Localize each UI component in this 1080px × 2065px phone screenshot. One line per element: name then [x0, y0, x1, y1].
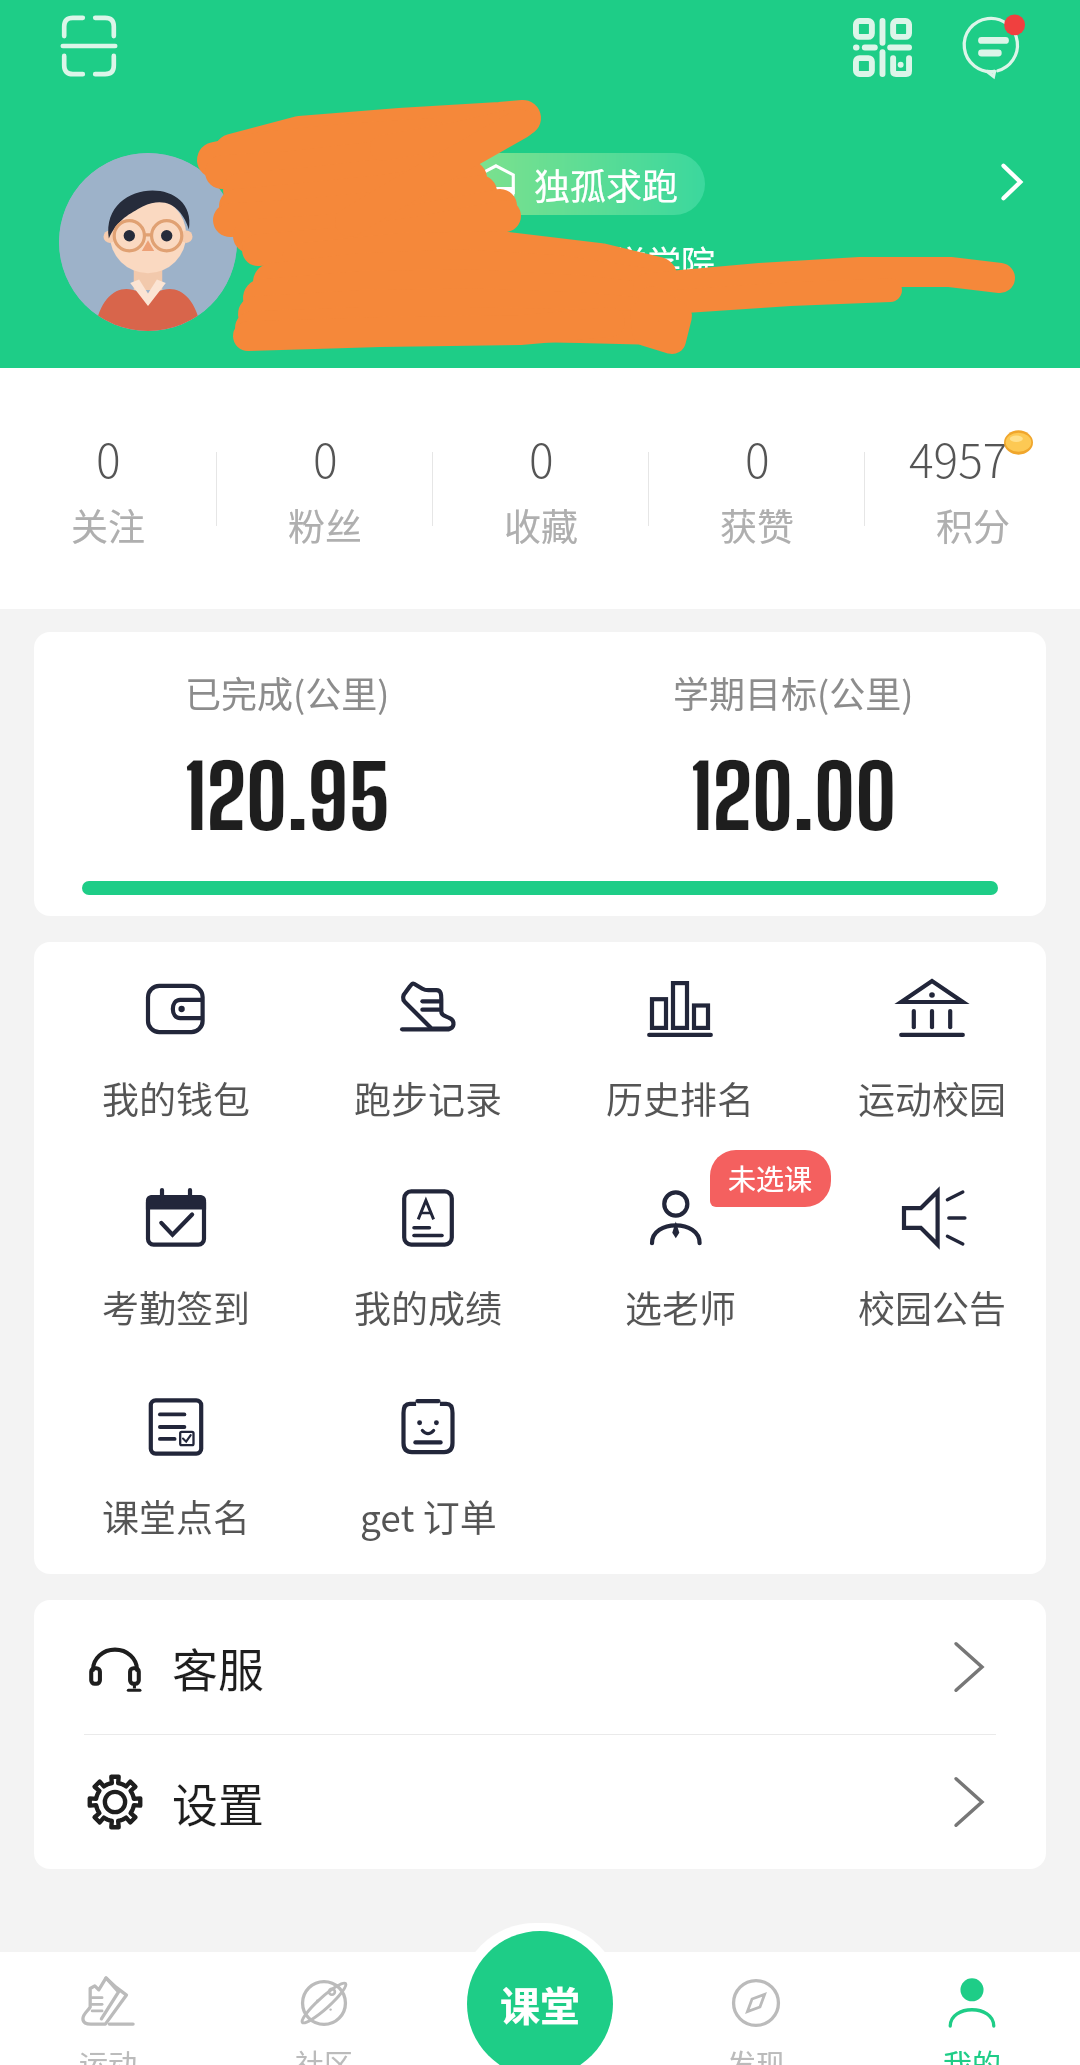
staticText: 考勤签到 [102, 1280, 250, 1334]
staticText: 120.00 [690, 744, 897, 848]
staticText: 选老师 [625, 1280, 736, 1334]
staticText: 独孤求跑 [534, 158, 679, 210]
button[interactable]: 设置 [34, 1735, 1046, 1869]
button[interactable]: Avatar [59, 153, 1040, 331]
button[interactable]: get 订单 [302, 1364, 554, 1573]
button[interactable]: 0 [217, 368, 432, 609]
staticText: 我的成绩 [354, 1280, 502, 1334]
staticText: 发现 [727, 2042, 786, 2065]
staticText: 4957 [909, 425, 1008, 492]
button[interactable]: 课堂 [467, 1931, 613, 2065]
staticText: 课堂 [500, 1975, 580, 2033]
staticText: get 订单 [360, 1489, 497, 1543]
button[interactable]: 历史排名 [554, 946, 806, 1155]
button[interactable]: 课堂点名 [50, 1364, 302, 1573]
staticText: 我的钱包 [102, 1071, 250, 1125]
staticText: 校园公告 [858, 1280, 1006, 1334]
button[interactable]: QR code [853, 18, 912, 77]
button[interactable]: 我的 [864, 1952, 1080, 2065]
staticText: 未选课 [728, 1158, 813, 1199]
staticText: 社区 [295, 2042, 354, 2065]
staticText: 0 [96, 425, 121, 492]
button[interactable]: 跑步记录 [302, 946, 554, 1155]
staticText: 0 [529, 425, 554, 492]
staticText: 120.95 [184, 744, 391, 848]
other: Avatar [59, 153, 237, 331]
button[interactable]: 0 [433, 368, 648, 609]
button[interactable]: Messages [957, 9, 1029, 81]
button[interactable]: 发现 [648, 1952, 864, 2065]
staticText: 收藏 [504, 498, 578, 552]
other: Profile details [982, 153, 1040, 211]
button[interactable]: 4957 [865, 368, 1080, 609]
button[interactable]: 我的钱包 [50, 946, 302, 1155]
button[interactable]: 我的成绩 [302, 1155, 554, 1364]
staticText: 历史排名 [606, 1071, 754, 1125]
button[interactable]: 考勤签到 [50, 1155, 302, 1364]
staticText: 积分 [936, 498, 1010, 552]
staticText: 0 [313, 425, 338, 492]
staticText: 我的 [943, 2042, 1002, 2065]
staticText: 课堂点名 [102, 1489, 250, 1543]
button[interactable]: 运动 [0, 1952, 216, 2065]
staticText: 粉丝 [288, 498, 362, 552]
button[interactable]: 0 [0, 368, 216, 609]
staticText: 设置 [172, 1769, 264, 1836]
staticText: 获赞 [720, 498, 794, 552]
button[interactable]: 已完成(公里) [34, 632, 1046, 916]
button[interactable]: 未选课 [554, 1155, 806, 1364]
staticText: 关注 [71, 498, 145, 552]
staticText: 已完成(公里) [185, 666, 390, 718]
button[interactable]: 0 [649, 368, 864, 609]
staticText: 跑步记录 [354, 1071, 502, 1125]
staticText: 运动 [79, 2042, 138, 2065]
button[interactable]: 运动校园 [806, 946, 1046, 1155]
button[interactable]: 客服 [34, 1600, 1046, 1734]
button[interactable]: 校园公告 [806, 1155, 1046, 1364]
staticText: 0 [745, 425, 770, 492]
button[interactable]: Scan [58, 14, 120, 78]
button[interactable]: 社区 [216, 1952, 432, 2065]
staticText: 运动校园 [858, 1071, 1006, 1125]
staticText: 客服 [172, 1634, 264, 1701]
staticText: 某某某学院物班电子科学学院 [273, 237, 715, 286]
staticText: 学期目标(公里) [673, 666, 914, 718]
